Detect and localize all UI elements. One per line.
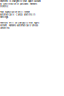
staticText: Your subscription will renew automatical…: [0, 11, 35, 18]
staticText: Payment will be charged to your Apple Ac…: [0, 21, 39, 29]
staticText: Payment is charged to your Apple Account…: [0, 0, 41, 8]
